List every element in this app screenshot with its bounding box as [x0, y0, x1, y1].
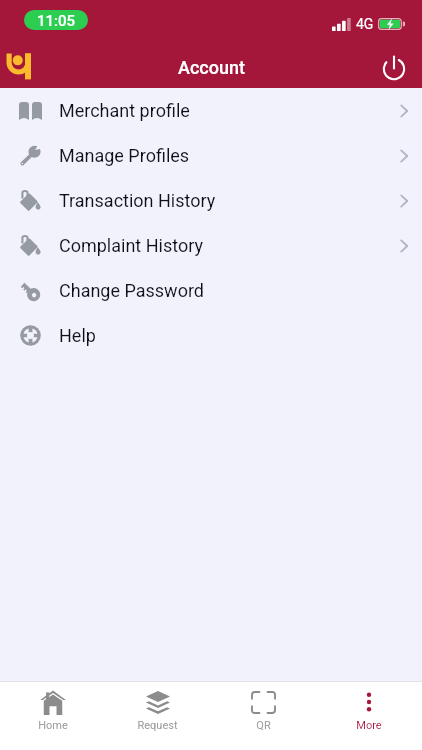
staticText: Merchant profile	[59, 100, 190, 121]
staticText: Home	[38, 719, 68, 732]
staticText: Change Password	[59, 280, 204, 301]
button[interactable]: Logout	[374, 47, 414, 87]
staticText: Transaction History	[59, 190, 216, 211]
button[interactable]: Home	[0, 682, 105, 750]
staticText: QR	[256, 719, 271, 732]
staticText: 4G	[356, 16, 374, 32]
button[interactable]: Change Password	[0, 268, 422, 313]
button[interactable]: Transaction History	[0, 178, 422, 223]
button[interactable]: Help	[0, 313, 422, 358]
button[interactable]: QR	[210, 682, 316, 750]
staticText: Complaint History	[59, 235, 203, 256]
button[interactable]: Manage Profiles	[0, 133, 422, 178]
button[interactable]: Complaint History	[0, 223, 422, 268]
staticText: 11:05	[37, 12, 76, 30]
staticText: Account	[178, 57, 245, 78]
staticText: Help	[59, 325, 96, 346]
staticText: Request	[137, 719, 178, 732]
staticText: Manage Profiles	[59, 145, 190, 166]
button[interactable]: Request	[105, 682, 210, 750]
button[interactable]: Bank logo	[0, 47, 38, 85]
staticText: More	[356, 719, 382, 732]
button[interactable]: Merchant profile	[0, 88, 422, 133]
button[interactable]: More	[316, 682, 422, 750]
